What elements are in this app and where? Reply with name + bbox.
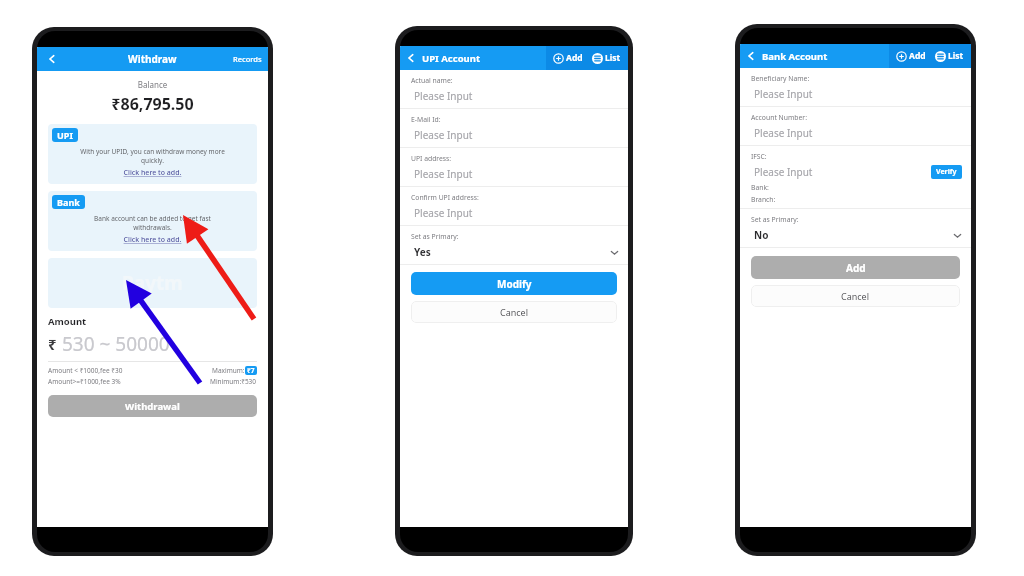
staticText: Please Input <box>754 87 813 101</box>
staticText: Account Number: <box>751 113 807 122</box>
button[interactable]: Back <box>740 44 762 68</box>
button[interactable]: Modify <box>411 272 617 295</box>
staticText: Beneficiary Name: <box>751 74 810 83</box>
staticText: List <box>605 52 621 64</box>
staticText: ₹7 <box>247 366 255 375</box>
staticText: Paytm <box>122 270 183 296</box>
button[interactable]: UPI address: <box>400 148 628 186</box>
button[interactable]: Verify <box>931 165 962 179</box>
staticText: Amount>=₹1000,fee 3% <box>48 377 121 386</box>
button[interactable]: Set as Primary: <box>740 209 971 247</box>
staticText: Add <box>846 261 866 275</box>
staticText: UPI address: <box>411 154 452 163</box>
staticText: Please Input <box>414 206 473 220</box>
button[interactable]: Account Number: <box>740 107 971 145</box>
staticText: UPI <box>57 129 73 141</box>
staticText: With your UPID, you can withdraw money m… <box>58 147 247 165</box>
staticText: Yes <box>414 245 431 259</box>
staticText: Confirm UPI address: <box>411 193 479 202</box>
staticText: Modify <box>497 277 532 291</box>
staticText: ₹ <box>48 334 57 354</box>
staticText: Please Input <box>754 165 813 179</box>
button[interactable]: Back <box>37 47 67 71</box>
staticText: Withdrawal <box>125 400 180 413</box>
staticText: Withdraw <box>128 52 177 66</box>
staticText: Please Input <box>414 89 473 103</box>
button[interactable]: Withdrawal <box>48 395 257 417</box>
staticText: List <box>948 50 964 62</box>
staticText: Branch: <box>751 195 776 204</box>
button[interactable]: Confirm UPI address: <box>400 187 628 225</box>
button[interactable]: List <box>590 52 623 64</box>
staticText: Please Input <box>414 167 473 181</box>
staticText: Bank Account <box>762 50 828 63</box>
staticText: 530 ~ 50000 <box>62 331 170 357</box>
button[interactable]: Add <box>751 256 960 279</box>
staticText: Add <box>566 52 583 64</box>
staticText: ₹86,795.50 <box>37 93 268 115</box>
staticText: Click here to add. <box>48 168 257 178</box>
button[interactable]: Set as Primary: <box>400 226 628 264</box>
staticText: Amount <box>48 315 87 328</box>
staticText: Click here to add. <box>48 235 257 245</box>
button[interactable]: List <box>933 50 966 62</box>
staticText: Records <box>233 54 262 64</box>
button[interactable]: UPI <box>48 124 257 184</box>
button[interactable]: Add <box>894 50 928 62</box>
staticText: Cancel <box>500 306 529 318</box>
staticText: Bank <box>57 196 80 208</box>
button[interactable]: E-Mail Id: <box>400 109 628 147</box>
staticText: Balance <box>37 79 268 90</box>
staticText: Actual name: <box>411 76 453 85</box>
staticText: Maximum: <box>212 366 245 375</box>
button[interactable]: Actual name: <box>400 70 628 108</box>
staticText: Minimum:₹530 <box>210 377 257 386</box>
staticText: E-Mail Id: <box>411 115 441 124</box>
button[interactable]: Cancel <box>751 285 960 307</box>
staticText: No <box>754 228 769 242</box>
button[interactable]: Records <box>233 47 262 71</box>
staticText: Please Input <box>754 126 813 140</box>
staticText: Set as Primary: <box>411 232 459 241</box>
staticText: Cancel <box>841 290 870 302</box>
staticText: Bank: <box>751 183 769 192</box>
staticText: Add <box>909 50 926 62</box>
staticText: Please Input <box>414 128 473 142</box>
button[interactable]: Add <box>551 52 585 64</box>
button[interactable]: Cancel <box>411 301 617 323</box>
staticText: Amount < ₹1000,fee ₹30 <box>48 366 123 375</box>
staticText: Verify <box>936 167 957 177</box>
staticText: UPI Account <box>422 52 481 65</box>
staticText: Set as Primary: <box>751 215 799 224</box>
button[interactable]: Back <box>400 46 422 70</box>
button[interactable]: Bank <box>48 191 257 251</box>
staticText: Bank account can be added to get fast wi… <box>58 214 247 232</box>
button[interactable]: Beneficiary Name: <box>740 68 971 106</box>
staticText: IFSC: <box>751 152 767 161</box>
